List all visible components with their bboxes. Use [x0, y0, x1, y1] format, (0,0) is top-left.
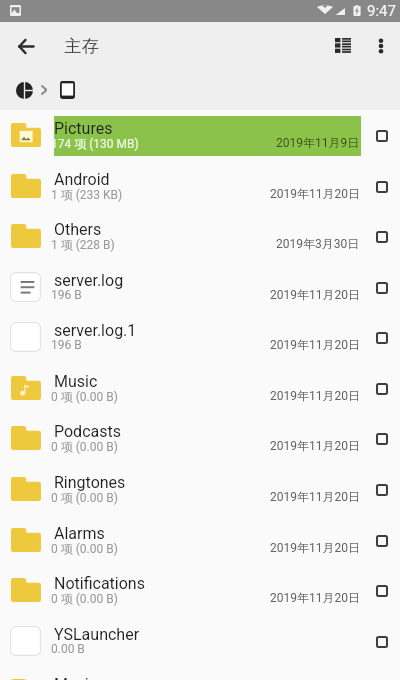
button[interactable]: Select Pictures — [371, 125, 393, 147]
button[interactable]: Select Ringtones — [371, 479, 393, 501]
button[interactable]: More options — [365, 30, 397, 62]
staticText: 2019年11月20日 — [270, 388, 360, 403]
staticText: 0 项 (0.00 B) — [51, 389, 118, 404]
staticText: Others — [54, 220, 102, 239]
button[interactable]: Select Others — [371, 226, 393, 248]
staticText: 0 项 (0.00 B) — [51, 541, 118, 556]
staticText: Pictures — [54, 119, 113, 138]
button[interactable]: Select Notifications — [371, 580, 393, 602]
staticText: Alarms — [54, 524, 105, 543]
button[interactable]: Notifications — [0, 565, 400, 616]
button[interactable]: Select Music — [371, 378, 393, 400]
button[interactable]: Alarms — [0, 515, 400, 566]
button[interactable]: Ringtones — [0, 464, 400, 515]
button[interactable]: Select server.log.1 — [371, 327, 393, 349]
button[interactable]: Music — [0, 363, 400, 414]
button[interactable]: Select Alarms — [371, 530, 393, 552]
staticText: 196 B — [51, 338, 82, 352]
button[interactable]: YSLauncher — [0, 616, 400, 667]
button[interactable]: Select YSLauncher — [371, 631, 393, 653]
staticText: 主存 — [64, 36, 99, 57]
staticText: Movies — [54, 675, 106, 680]
staticText: 174 项 (130 MB) — [51, 136, 139, 151]
button[interactable]: server.log.1 — [0, 312, 400, 363]
button[interactable]: Podcasts — [0, 413, 400, 464]
staticText: 2019年11月20日 — [270, 489, 360, 504]
staticText: 1 项 (228 B) — [51, 237, 115, 252]
button[interactable]: Pictures — [0, 110, 400, 161]
staticText: 9:47 — [367, 2, 396, 20]
staticText: 0.00 B — [51, 642, 85, 656]
staticText: Music — [54, 372, 98, 391]
button[interactable]: Android — [0, 161, 400, 212]
button[interactable]: Movies — [0, 666, 400, 680]
staticText: 2019年11月20日 — [270, 287, 360, 302]
staticText: Notifications — [54, 574, 145, 593]
staticText: 0 项 (0.00 B) — [51, 439, 118, 454]
staticText: 2019年11月20日 — [270, 337, 360, 352]
staticText: 0 项 (0.00 B) — [51, 591, 118, 606]
staticText: server.log.1 — [54, 321, 137, 340]
staticText: Android — [54, 170, 110, 189]
staticText: 1 项 (233 KB) — [51, 187, 123, 202]
staticText: 196 B — [51, 288, 82, 302]
button[interactable]: Select Android — [371, 176, 393, 198]
button[interactable]: server.log — [0, 262, 400, 313]
button[interactable]: Back — [4, 24, 48, 68]
button[interactable]: Select Podcasts — [371, 428, 393, 450]
staticText: Podcasts — [54, 422, 121, 441]
button[interactable]: View mode — [327, 30, 359, 62]
staticText: 2019年11月20日 — [270, 186, 360, 201]
button[interactable]: Others — [0, 211, 400, 262]
staticText: 2019年11月20日 — [270, 438, 360, 453]
staticText: Ringtones — [54, 473, 126, 492]
button[interactable]: Select server.log — [371, 277, 393, 299]
button[interactable]: Internal storage — [53, 76, 81, 104]
staticText: 0 项 (0.00 B) — [51, 490, 118, 505]
staticText: 2019年11月9日 — [276, 135, 360, 150]
staticText: 2019年11月20日 — [270, 540, 360, 555]
button[interactable]: Storage root — [10, 76, 38, 104]
staticText: 2019年11月20日 — [270, 590, 360, 605]
staticText: server.log — [54, 271, 124, 290]
staticText: YSLauncher — [54, 625, 140, 644]
staticText: 2019年3月30日 — [276, 236, 360, 251]
